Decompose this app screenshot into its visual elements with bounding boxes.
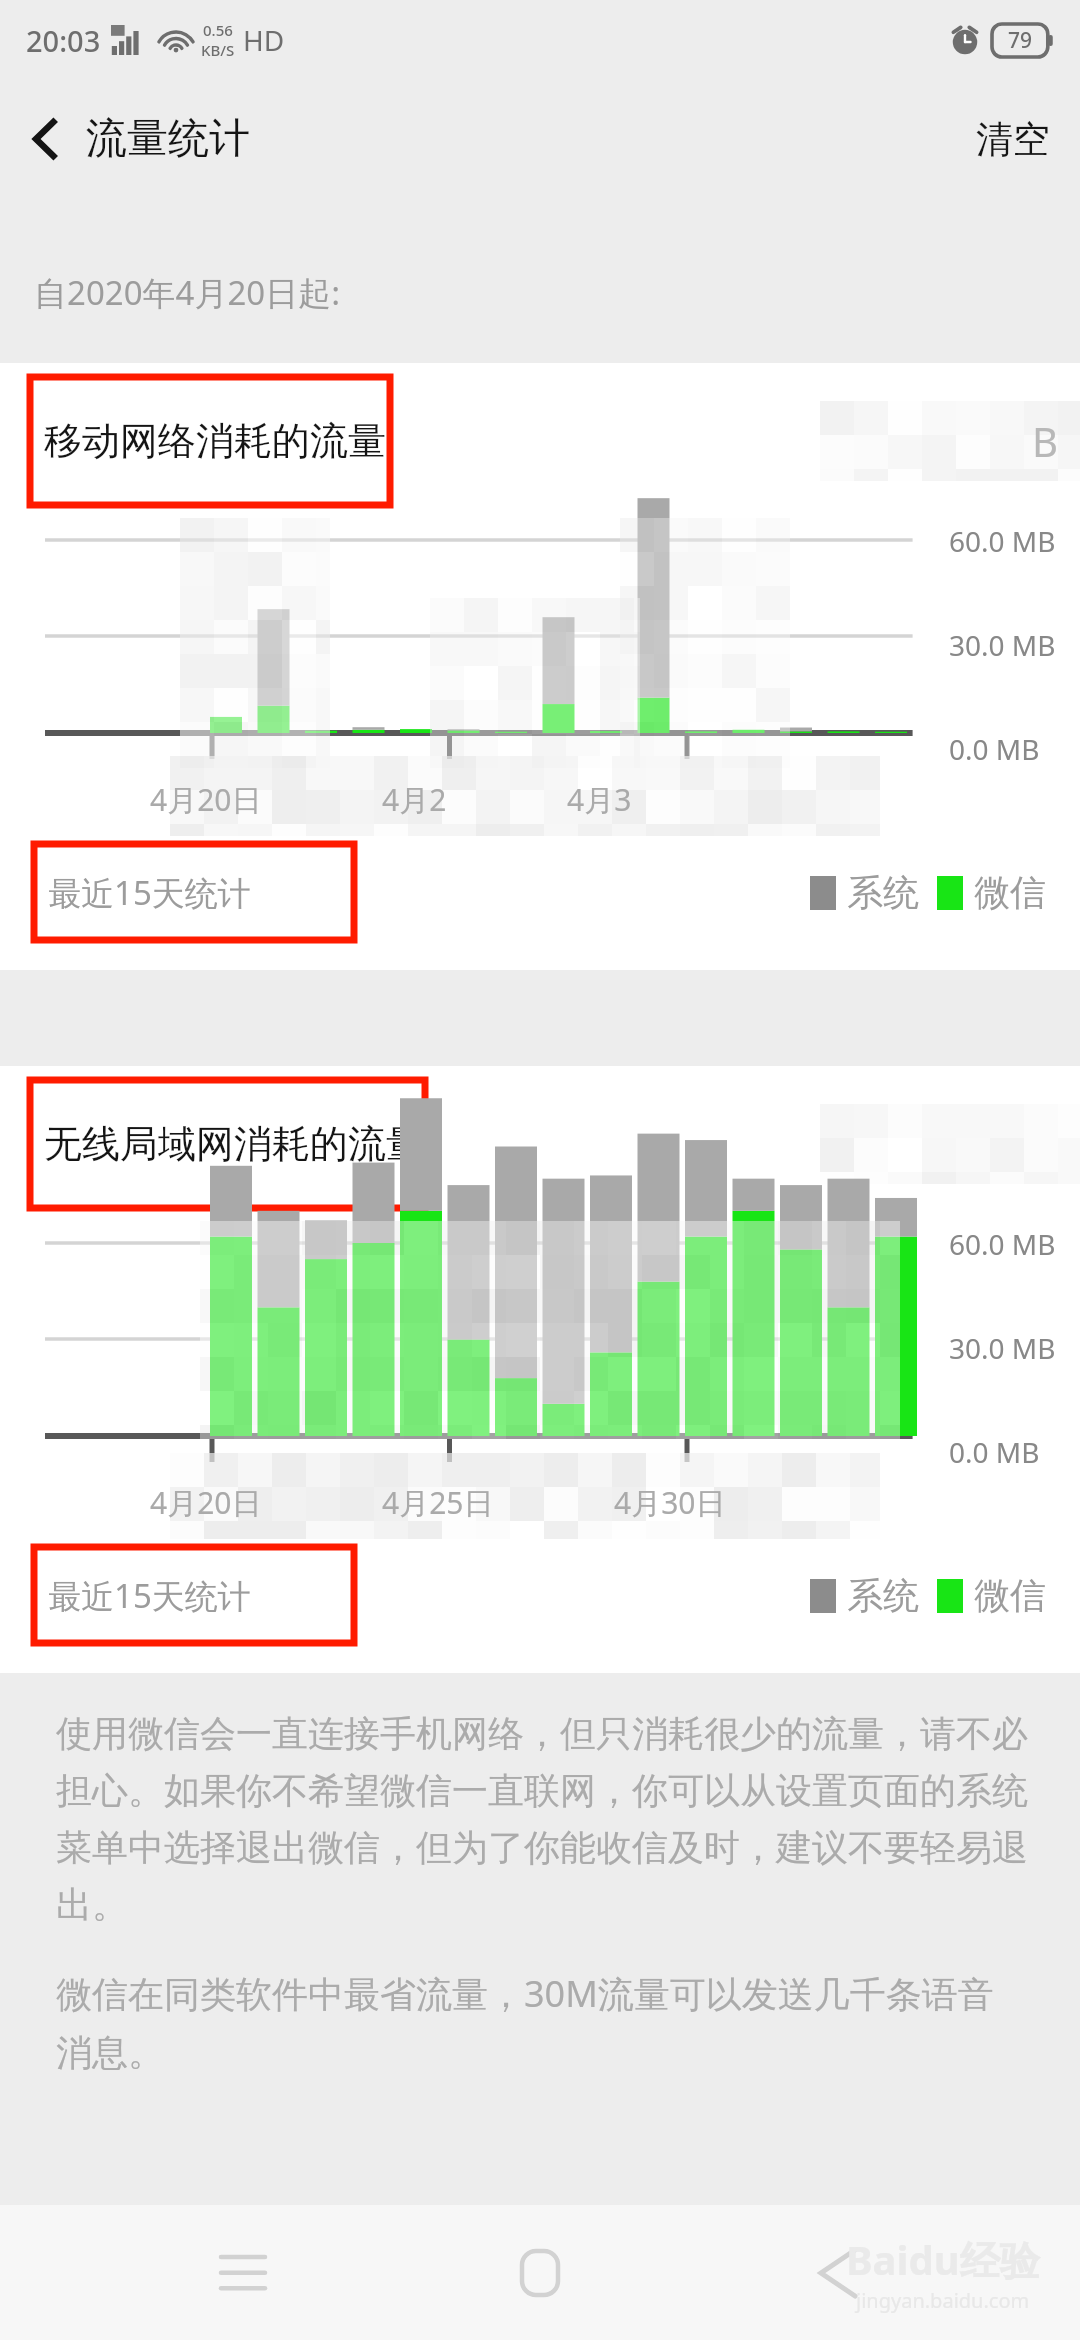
button[interactable]: 系统 bbox=[810, 870, 1046, 915]
staticText: 最近15天统计 bbox=[48, 870, 251, 915]
staticText: 自2020年4月20日起: bbox=[34, 270, 340, 315]
staticText: 微信 bbox=[974, 1573, 1046, 1618]
staticText: 20:03 bbox=[26, 21, 101, 60]
staticText: Baidu经验 bbox=[846, 2232, 1040, 2287]
button[interactable]: 清空 bbox=[952, 100, 1080, 179]
staticText: HD bbox=[243, 21, 285, 59]
staticText: 4月2 bbox=[382, 779, 447, 820]
button[interactable]: 系统 bbox=[810, 1573, 1046, 1618]
staticText: 4月25日 bbox=[382, 1482, 494, 1523]
button[interactable]: Back bbox=[0, 99, 270, 179]
button[interactable]: Recent apps bbox=[188, 2218, 298, 2328]
staticText: 系统 bbox=[847, 870, 919, 915]
staticText: 30.0 MB bbox=[949, 1329, 1056, 1367]
staticText: 60.0 MB bbox=[949, 522, 1056, 560]
staticText: 微信在同类软件中最省流量，30M流量可以发送几千条语音消息。 bbox=[56, 1969, 1028, 2075]
staticText: 使用微信会一直连接手机网络，但只消耗很少的流量，请不必担心。如果你不希望微信一直… bbox=[56, 1711, 1028, 1927]
staticText: 79 bbox=[1008, 26, 1033, 55]
staticText: 系统 bbox=[847, 1573, 919, 1618]
staticText: 最近15天统计 bbox=[48, 1573, 251, 1618]
staticText: KB/S bbox=[201, 40, 235, 60]
staticText: jingyan.baidu.com bbox=[856, 2287, 1030, 2314]
staticText: 60.0 MB bbox=[949, 1225, 1056, 1263]
button[interactable]: Back bbox=[783, 2218, 893, 2328]
staticText: 4月3 bbox=[567, 779, 632, 820]
staticText: 30.0 MB bbox=[949, 626, 1056, 664]
staticText: 0.0 MB bbox=[949, 1433, 1040, 1471]
staticText: 清空 bbox=[976, 116, 1050, 163]
button[interactable]: 无线局域网消耗的流量 bbox=[30, 1120, 424, 1168]
staticText: 微信 bbox=[974, 870, 1046, 915]
button[interactable]: 移动网络消耗的流量 bbox=[30, 417, 386, 465]
other: Back bbox=[30, 116, 60, 162]
staticText: 4月30日 bbox=[614, 1482, 726, 1523]
staticText: 无线局域网消耗的流量 bbox=[44, 1120, 424, 1168]
staticText: 流量统计 bbox=[86, 113, 250, 165]
staticText: 0.56 bbox=[203, 20, 233, 40]
staticText: 4月20日 bbox=[150, 779, 262, 820]
staticText: 0.0 MB bbox=[949, 730, 1040, 768]
staticText: B bbox=[1032, 414, 1058, 468]
button[interactable]: Home bbox=[485, 2218, 595, 2328]
staticText: 4月20日 bbox=[150, 1482, 262, 1523]
staticText: 移动网络消耗的流量 bbox=[44, 417, 386, 465]
